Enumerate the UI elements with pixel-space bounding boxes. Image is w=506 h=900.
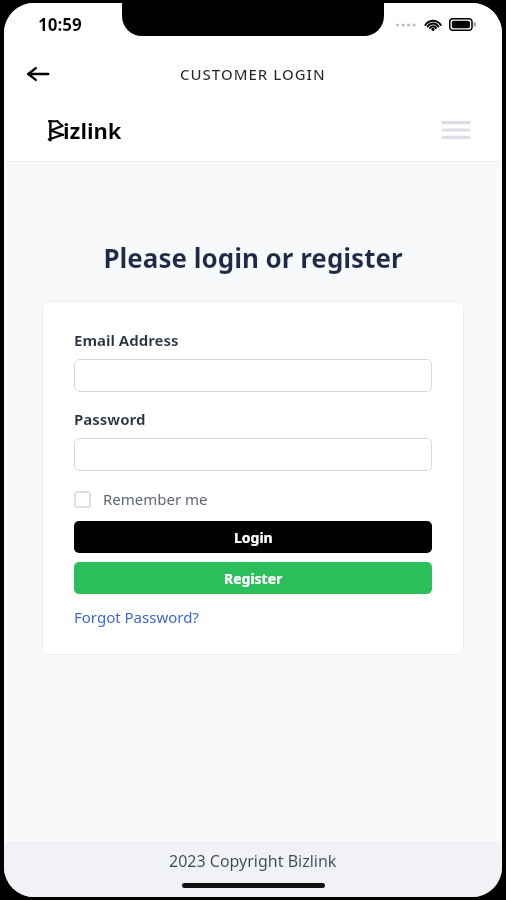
staticText: Email Address xyxy=(74,330,179,350)
staticText: Please login or register xyxy=(4,240,502,275)
staticText: 2023 Copyright Bizlink xyxy=(169,850,337,872)
button[interactable]: Back xyxy=(16,52,60,96)
button[interactable]: Forgot Password? xyxy=(74,607,199,627)
staticText: Login xyxy=(234,528,273,547)
staticText: Remember me xyxy=(103,489,208,509)
staticText: CUSTOMER LOGIN xyxy=(180,64,326,84)
button[interactable]: Login xyxy=(74,521,432,553)
staticText: Forgot Password? xyxy=(74,607,199,627)
button[interactable]: Remember me xyxy=(74,489,208,509)
button[interactable] xyxy=(74,359,432,392)
staticText: izlink xyxy=(63,115,122,145)
staticText: Password xyxy=(74,409,146,429)
staticText: Register xyxy=(224,569,283,588)
staticText: 10:59 xyxy=(38,13,82,36)
button[interactable] xyxy=(74,438,432,471)
button[interactable]: Register xyxy=(74,562,432,594)
button[interactable]: Open menu xyxy=(434,108,478,152)
